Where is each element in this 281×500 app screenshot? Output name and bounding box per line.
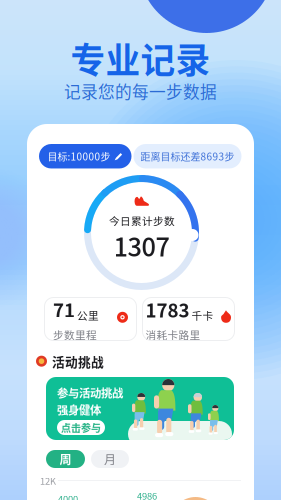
staticText: 专业记录: [70, 33, 210, 83]
staticText: 公里: [77, 307, 99, 323]
staticText: 距离目标还差8693步: [140, 149, 234, 163]
button[interactable]: 月: [91, 450, 129, 468]
staticText: 71: [53, 296, 75, 323]
staticText: 消耗卡路里: [145, 327, 200, 342]
staticText: 1783: [145, 296, 189, 323]
staticText: 步数里程: [53, 327, 97, 342]
staticText: 活动挑战: [52, 352, 104, 370]
button[interactable]: 距离目标还差8693步: [133, 144, 241, 168]
staticText: 月: [104, 450, 116, 468]
staticText: 千卡: [191, 307, 213, 323]
staticText: 12K: [40, 474, 56, 487]
staticText: 点击参与: [61, 420, 101, 435]
staticText: 4000: [58, 492, 78, 500]
button[interactable]: 周: [46, 450, 85, 468]
staticText: 今日累计步数: [109, 213, 175, 228]
staticText: 参与活动挑战: [57, 384, 123, 401]
staticText: 4986: [137, 489, 157, 500]
staticText: 强身健体: [57, 401, 101, 418]
staticText: 1307: [113, 227, 169, 264]
button[interactable]: 目标:10000步: [39, 144, 131, 168]
button[interactable]: 参与活动挑战: [46, 377, 234, 440]
staticText: 记录您的每一步数据: [64, 79, 217, 103]
staticText: 周: [59, 450, 71, 468]
staticText: 目标:10000步: [47, 149, 110, 163]
